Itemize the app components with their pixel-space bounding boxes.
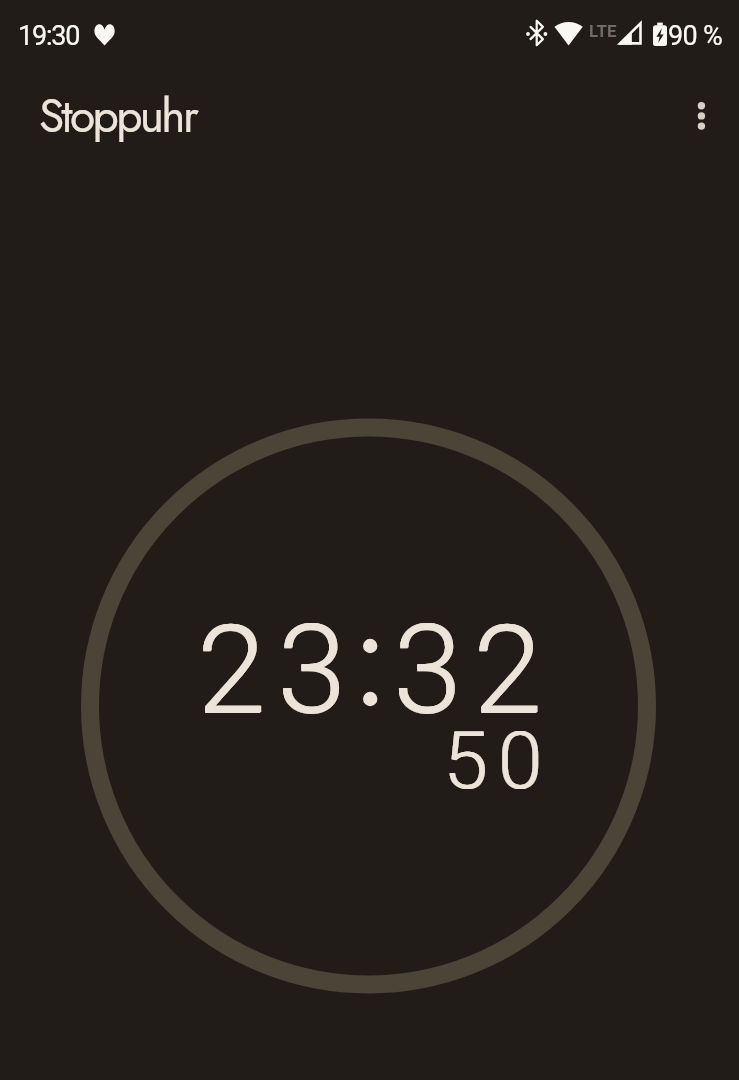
staticText: 32 (393, 599, 554, 743)
button[interactable] (677, 92, 725, 140)
staticText: 50 (443, 714, 552, 808)
staticText: LTE (589, 21, 617, 41)
staticText: 19:30 (18, 20, 80, 52)
staticText: 32 (394, 598, 555, 742)
button[interactable] (81, 418, 656, 993)
staticText: 23 (197, 598, 358, 742)
staticText: 90 % (668, 20, 723, 52)
staticText: 23 (198, 598, 359, 742)
staticText: Stoppuhr (39, 83, 197, 149)
staticText: 50 (444, 714, 553, 808)
staticText: 23 (197, 599, 358, 743)
staticText: 32 (393, 598, 554, 742)
